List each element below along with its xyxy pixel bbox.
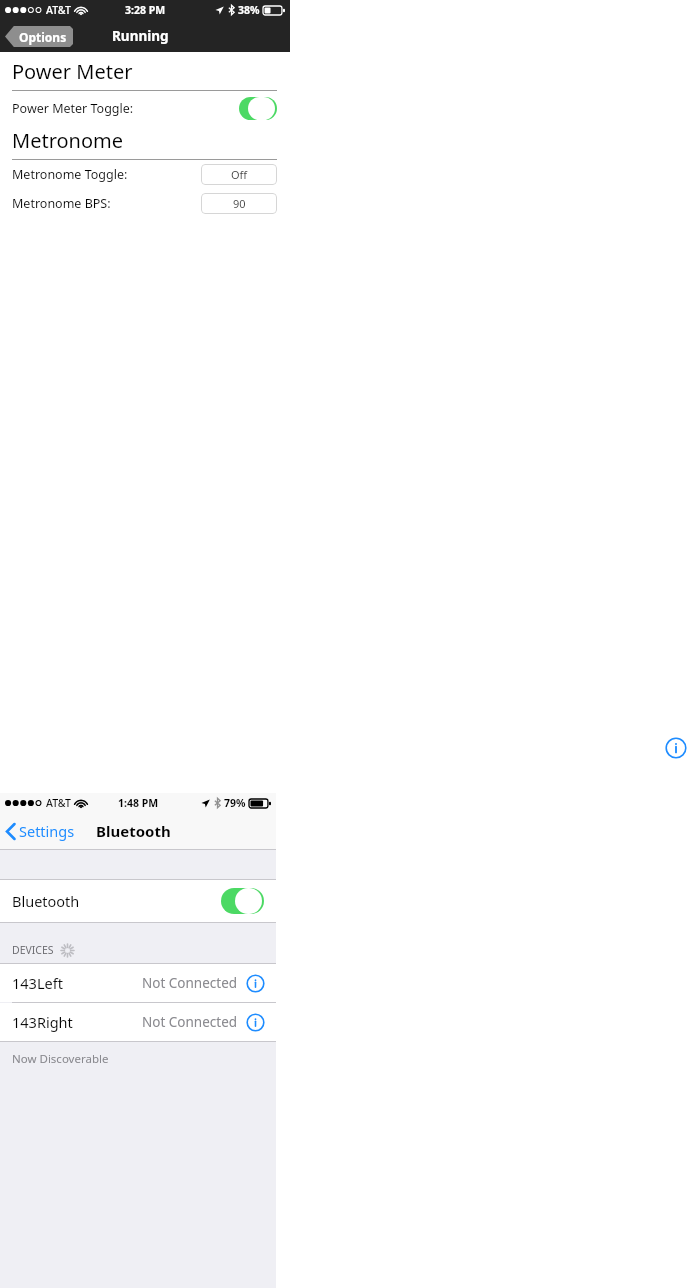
staticText: Bluetooth [96,821,171,841]
staticText: AT&T [46,796,71,810]
staticText: Running [112,27,169,45]
staticText: Metronome Toggle: [12,166,128,183]
button[interactable]: 90 [201,193,277,214]
staticText: 90 [233,196,246,211]
button[interactable] [221,888,264,914]
staticText: Options [19,29,67,45]
staticText: Metronome [12,127,124,154]
staticText: Now Discoverable [12,1051,109,1067]
staticText: Off [231,167,248,182]
button[interactable]: Off [201,164,277,185]
staticText: 3:28 PM [125,3,166,17]
staticText: AT&T [46,3,71,17]
button[interactable]: More info [246,974,265,993]
staticText: Metronome BPS: [12,195,111,212]
button[interactable]: Settings [6,821,75,841]
staticText: 38% [238,3,260,17]
staticText: 79% [224,796,246,810]
button[interactable]: More info [665,737,687,759]
button[interactable]: Options [5,26,73,47]
button[interactable] [239,97,277,120]
staticText: Not Connected [142,974,238,992]
button[interactable]: More info [246,1013,265,1032]
button[interactable]: Bluetooth [12,880,264,922]
staticText: DEVICES [12,943,54,957]
staticText: Bluetooth [12,891,80,911]
staticText: Not Connected [142,1013,238,1031]
button[interactable]: Power Meter Toggle: [12,91,277,125]
staticText: Power Meter [12,58,133,85]
staticText: Settings [19,821,75,841]
staticText: 143Left [12,973,63,993]
button[interactable]: 143Right [12,1003,265,1041]
button[interactable]: 143Left [12,964,265,1002]
staticText: 143Right [12,1012,73,1032]
staticText: Power Meter Toggle: [12,100,134,117]
staticText: 1:48 PM [118,796,159,810]
